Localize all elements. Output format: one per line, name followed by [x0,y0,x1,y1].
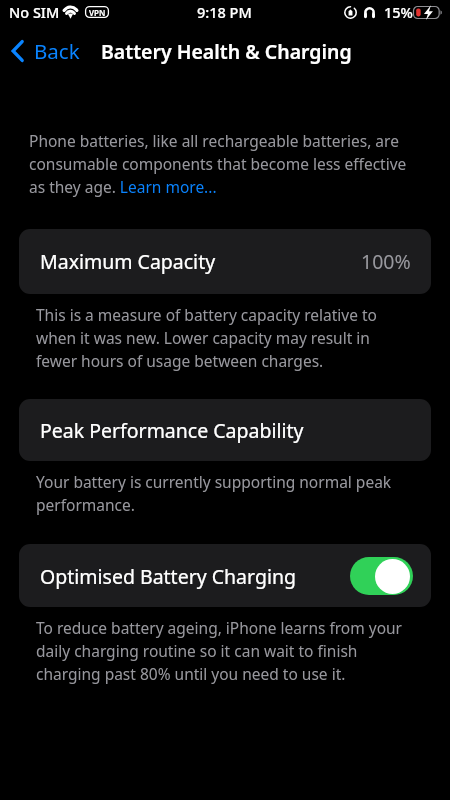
staticText: Back [34,37,80,63]
staticText: Phone batteries, like all rechargeable b… [29,130,415,198]
staticText: This is a measure of battery capacity re… [36,304,408,372]
button[interactable]: Optimised Battery Charging toggle, on [350,557,413,595]
button[interactable]: Maximum Capacity [19,229,431,294]
button[interactable]: Back [6,37,80,63]
staticText: 100% [361,248,411,275]
staticText: Battery Health & Charging [101,38,352,65]
staticText: 9:18 PM [197,2,252,22]
staticText: To reduce battery ageing, iPhone learns … [36,617,408,685]
staticText: VPN [89,7,106,18]
button[interactable]: Optimised Battery Charging [19,544,431,607]
staticText: No SIM [9,2,60,22]
button[interactable]: Peak Performance Capability [19,399,431,461]
staticText: 15% [384,2,413,22]
staticText: Peak Performance Capability [40,417,304,444]
staticText: Maximum Capacity [40,248,216,275]
staticText: Your battery is currently supporting nor… [36,471,408,516]
staticText: Optimised Battery Charging [40,563,296,590]
